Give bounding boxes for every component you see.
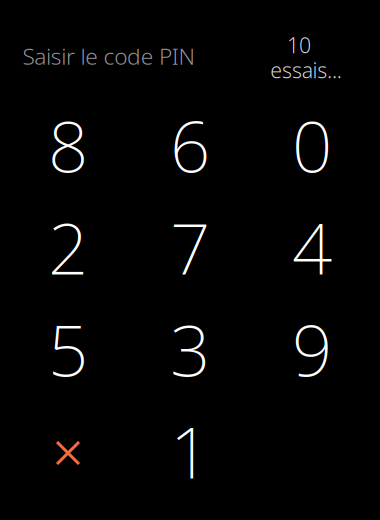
staticText: 8 [48,98,88,192]
button[interactable]: 3 [129,299,251,399]
staticText: 1 [170,404,210,498]
button[interactable]: 0 [251,95,373,195]
button[interactable]: 1 [129,401,251,501]
button[interactable]: 7 [129,197,251,297]
button[interactable]: 4 [251,197,373,297]
staticText: Saisir le code PIN [22,41,195,71]
button[interactable]: 6 [129,95,251,195]
staticText: 9 [292,302,332,396]
staticText: 10 [287,31,311,59]
button[interactable]: 2 [7,197,129,297]
button[interactable]: 9 [251,299,373,399]
staticText: 5 [48,302,88,396]
button[interactable]: 5 [7,299,129,399]
button[interactable]: Supprimer [7,401,129,501]
staticText: 7 [170,200,210,294]
staticText: 2 [48,200,88,294]
button[interactable]: 8 [7,95,129,195]
staticText: 6 [170,98,210,192]
staticText: 4 [292,200,332,294]
staticText: essais... [270,56,342,84]
staticText: 3 [170,302,210,396]
staticText: 0 [292,98,332,192]
